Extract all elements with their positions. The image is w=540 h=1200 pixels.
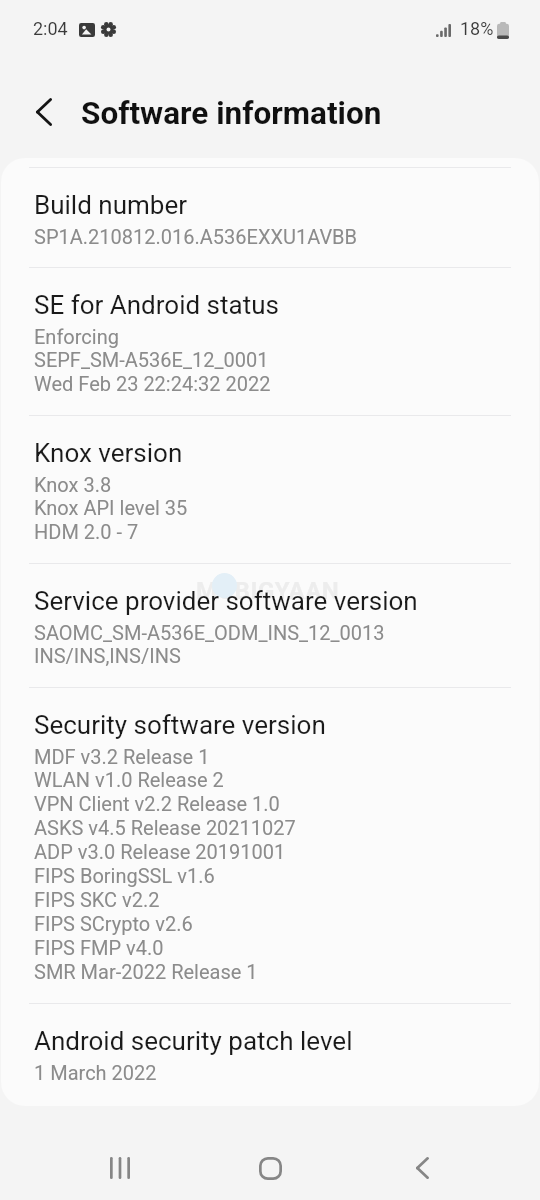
staticText: Knox 3.8 Knox API level 35 HDM 2.0 - 7	[34, 473, 188, 544]
button[interactable]: Security software version	[1, 688, 539, 1003]
staticText: MOBIGYAAN	[196, 577, 340, 605]
staticText: Software information	[81, 95, 382, 132]
staticText: Enforcing SEPF_SM-A536E_12_0001 Wed Feb …	[34, 325, 271, 396]
staticText: Security software version	[34, 710, 326, 740]
staticText: Service provider software version	[34, 586, 418, 616]
button[interactable]: Service provider software version	[1, 564, 539, 687]
button[interactable]: SE for Android status	[1, 268, 539, 415]
button[interactable]: Home	[226, 1139, 314, 1197]
button[interactable]: Build number	[1, 168, 539, 267]
staticText: SP1A.210812.016.A536EXXU1AVBB	[34, 225, 358, 248]
button[interactable]: Recent apps	[76, 1139, 164, 1197]
staticText: 18%	[460, 18, 494, 39]
staticText: Android security patch level	[34, 1026, 353, 1056]
button[interactable]: Android security patch level	[1, 1004, 539, 1103]
button[interactable]: Knox version	[1, 416, 539, 563]
staticText: SE for Android status	[34, 290, 279, 320]
staticText: Build number	[34, 190, 187, 220]
button[interactable]: Back	[378, 1139, 466, 1197]
staticText: MDF v3.2 Release 1 WLAN v1.0 Release 2 V…	[34, 745, 296, 984]
button[interactable]: Navigate up	[20, 88, 68, 136]
staticText: 1 March 2022	[34, 1061, 157, 1084]
staticText: SAOMC_SM-A536E_ODM_INS_12_0013 INS/INS,I…	[34, 621, 385, 668]
staticText: Knox version	[34, 438, 183, 468]
staticText: 2:04	[33, 18, 68, 39]
